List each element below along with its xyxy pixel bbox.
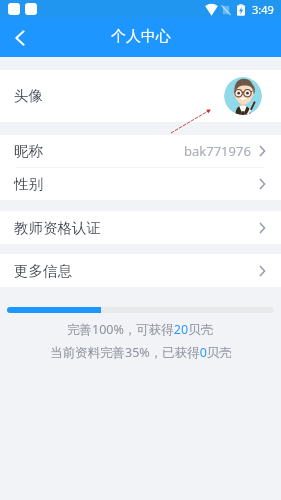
staticText: 3:49 [252,2,274,17]
staticText: 性别 [14,175,43,193]
staticText: 昵称 [14,142,43,160]
staticText: 个人中心 [111,27,171,46]
button[interactable]: 更多信息 [0,254,281,287]
staticText: 头像 [14,87,43,105]
button[interactable]: 教师资格认证 [0,211,281,244]
staticText: 教师资格认证 [14,219,101,237]
staticText: 当前资料完善35%，已获得0贝壳 [50,344,232,361]
button[interactable]: 头像 [0,70,281,122]
button[interactable]: 昵称 [0,135,281,167]
staticText: 更多信息 [14,262,72,280]
button[interactable]: Back [0,18,39,57]
button[interactable]: 性别 [0,168,281,200]
staticText: bak771976 [184,142,251,160]
staticText: 完善100%，可获得20贝壳 [67,321,214,338]
